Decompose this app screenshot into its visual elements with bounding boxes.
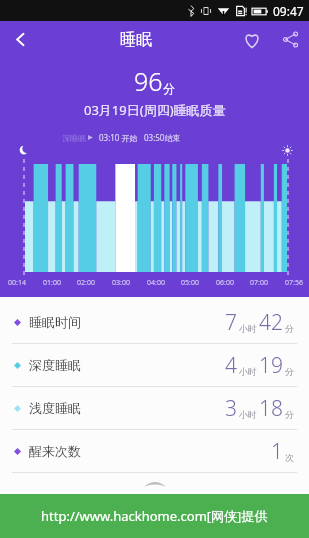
staticText: 1 [271,437,283,466]
staticText: 小时 [239,409,257,420]
staticText: 03月19日(周四)睡眠质量 [84,101,226,119]
button[interactable]: Share [271,21,309,58]
staticText: 睡眠 [120,30,152,50]
button[interactable]: Expand [0,473,309,494]
staticText: http://www.hackhome.com[网侠]提供 [41,507,268,525]
staticText: 01:00 [43,278,61,288]
staticText: 06:00 [216,278,234,288]
staticText: 04:00 [147,278,165,288]
button[interactable]: 醒来次数 [0,430,309,472]
button[interactable]: 浅度睡眠 [0,387,309,429]
staticText: 18 [259,394,283,423]
staticText: 深度睡眠 [29,357,81,373]
staticText: 分 [285,323,294,334]
staticText: 醒来次数 [29,443,81,459]
staticText: 分 [285,366,294,377]
staticText: 19 [259,351,283,380]
staticText: 次 [285,452,294,463]
staticText: 09:47 [273,3,304,19]
staticText: 分 [163,81,175,96]
staticText: 03:50结束 [144,132,181,143]
staticText: 03:10 开始 [99,132,138,143]
staticText: 07:00 [250,278,268,288]
staticText: 3 [225,394,237,423]
staticText: 07:56 [285,278,303,288]
button[interactable]: 深度睡眠 [0,344,309,386]
staticText: 03:00 [112,278,130,288]
staticText: 浅度睡眠 [29,400,81,416]
staticText: 05:00 [181,278,199,288]
staticText: 96 [134,64,163,98]
staticText: 42 [259,308,283,337]
staticText: 小时 [239,366,257,377]
staticText: 4 [225,351,237,380]
staticText: 00:14 [8,278,26,288]
staticText: 睡眠时间 [29,314,81,330]
button[interactable]: 睡眠时间 [0,301,309,343]
staticText: 深睡眠 [62,133,86,143]
button[interactable]: Favorite [233,21,271,58]
staticText: 02:00 [77,278,95,288]
staticText: 小时 [239,323,257,334]
staticText: 7 [225,308,237,337]
staticText: 分 [285,409,294,420]
button[interactable]: Back [0,21,40,58]
